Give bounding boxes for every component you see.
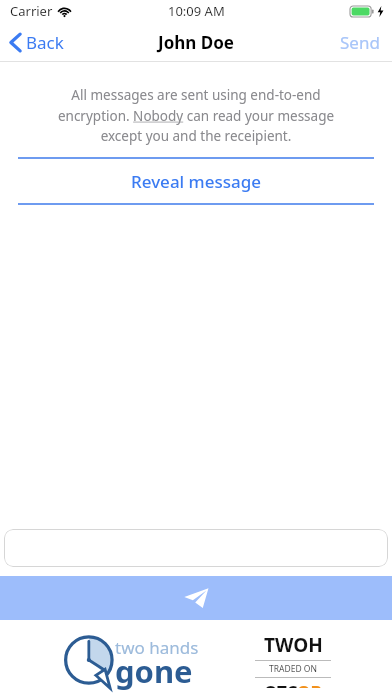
staticText: Carrier	[10, 2, 53, 20]
staticText: All messages are sent using end-to-end e…	[44, 86, 348, 145]
staticText: TWOH	[264, 632, 323, 658]
staticText: Reveal message	[131, 170, 262, 193]
button[interactable]: Back	[0, 25, 76, 60]
staticText: two hands	[115, 636, 199, 659]
staticText: 10:09 AM	[168, 2, 225, 20]
staticText: Back	[26, 31, 64, 54]
button[interactable]: Send	[328, 25, 392, 60]
button[interactable]	[4, 529, 388, 567]
button[interactable]: Send message	[0, 576, 392, 620]
staticText: OTCQB	[264, 681, 322, 688]
button[interactable]: Reveal message	[0, 159, 392, 203]
staticText: gone	[115, 650, 193, 692]
staticText: TRADED ON	[269, 663, 317, 675]
staticText: Send	[340, 31, 380, 54]
staticText: John Doe	[158, 31, 234, 54]
